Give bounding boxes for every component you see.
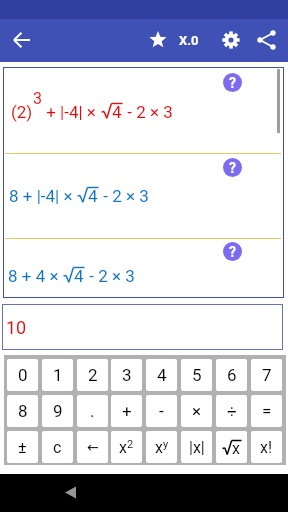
staticText: + |-4| × (42, 102, 101, 122)
staticText: ← (87, 439, 99, 455)
button[interactable]: 3 (111, 359, 142, 391)
staticText: ± (18, 438, 27, 457)
button[interactable]: 8 (7, 395, 38, 427)
staticText: ÷ (227, 401, 237, 421)
staticText: c (53, 438, 62, 457)
staticText: + (122, 401, 132, 421)
staticText: 0 (18, 365, 28, 385)
staticText: 4 (112, 102, 122, 122)
button[interactable]: x! (251, 431, 282, 463)
staticText: 1 (53, 365, 63, 385)
button[interactable]: ± (7, 431, 38, 463)
staticText: 4 (157, 365, 167, 385)
staticText: 8 (18, 401, 28, 421)
button[interactable]: - (146, 395, 177, 427)
button[interactable]: c (42, 431, 73, 463)
staticText: 4 (74, 266, 84, 286)
staticText: 7 (262, 365, 272, 385)
button[interactable]: ? (223, 158, 242, 177)
button[interactable]: . (77, 395, 108, 427)
staticText: - 2 × 3 (85, 266, 135, 286)
staticText: 9 (53, 401, 63, 421)
button[interactable]: ← (77, 431, 108, 463)
staticText: x (119, 438, 127, 457)
button[interactable] (251, 24, 281, 56)
staticText: ? (229, 75, 236, 91)
button[interactable]: × (181, 395, 212, 427)
staticText: (2) (11, 102, 33, 122)
staticText: 6 (227, 365, 237, 385)
button[interactable]: |x| (181, 431, 212, 463)
button[interactable]: 6 (216, 359, 247, 391)
staticText: 5 (192, 365, 202, 385)
staticText: ? (229, 160, 236, 176)
button[interactable] (143, 24, 173, 56)
button[interactable]: 2 (77, 359, 108, 391)
staticText: - (159, 401, 164, 421)
staticText: X.0 (179, 33, 199, 48)
button[interactable]: 5 (181, 359, 212, 391)
button[interactable]: = (251, 395, 282, 427)
button[interactable]: 9 (42, 395, 73, 427)
button[interactable] (6, 24, 38, 56)
staticText: 8 + 4 × (8, 266, 63, 286)
staticText: |x| (189, 438, 205, 457)
staticText: = (262, 401, 272, 421)
staticText: 3 (33, 89, 42, 108)
button[interactable]: ? (223, 73, 242, 92)
staticText: 10 (6, 317, 27, 338)
staticText: 2 (127, 438, 134, 451)
button[interactable]: ÷ (216, 395, 247, 427)
button[interactable] (216, 24, 246, 56)
button[interactable]: X.0 (174, 24, 204, 56)
staticText: . (90, 401, 95, 421)
staticText: y (163, 438, 169, 451)
staticText: x (232, 439, 240, 458)
staticText: x (155, 438, 163, 457)
button[interactable] (58, 482, 82, 506)
staticText: ? (229, 244, 236, 260)
staticText: 2 (88, 365, 98, 385)
staticText: × (192, 401, 202, 421)
button[interactable]: 7 (251, 359, 282, 391)
button[interactable]: 4 (146, 359, 177, 391)
staticText: 3 (122, 365, 132, 385)
staticText: - 2 × 3 (99, 186, 149, 206)
button[interactable]: x (111, 431, 142, 463)
staticText: x! (260, 438, 273, 457)
button[interactable]: ? (223, 242, 242, 261)
staticText: - 2 × 3 (123, 102, 173, 122)
staticText: 4 (88, 186, 98, 206)
staticText: 8 + |-4| × (9, 186, 77, 206)
button[interactable]: 0 (7, 359, 38, 391)
button[interactable]: 1 (42, 359, 73, 391)
button[interactable]: x (216, 431, 247, 463)
button[interactable]: + (111, 395, 142, 427)
button[interactable]: x (146, 431, 177, 463)
